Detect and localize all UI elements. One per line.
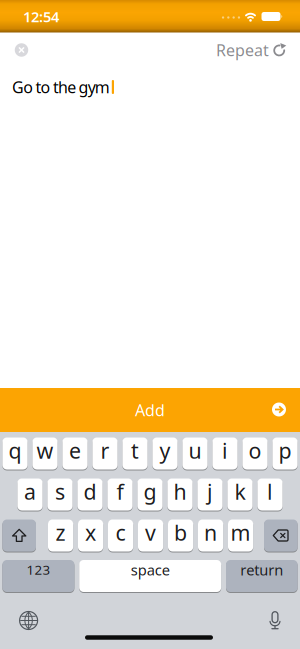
button[interactable]: p xyxy=(272,437,298,470)
button[interactable]: Close xyxy=(10,39,32,61)
button[interactable]: f xyxy=(107,478,133,511)
button[interactable]: e xyxy=(62,437,88,470)
staticText: Repeat xyxy=(216,39,269,61)
staticText: Add xyxy=(135,399,165,421)
staticText: d xyxy=(83,477,96,506)
button[interactable]: j xyxy=(197,478,223,511)
button[interactable]: r xyxy=(92,437,118,470)
button[interactable]: u xyxy=(182,437,208,470)
button[interactable]: Shift xyxy=(2,519,36,552)
button[interactable]: y xyxy=(152,437,178,470)
button[interactable]: z xyxy=(48,519,73,552)
staticText: m xyxy=(231,518,251,547)
staticText: k xyxy=(234,477,245,506)
button[interactable]: Add xyxy=(0,388,300,432)
button[interactable]: i xyxy=(212,437,238,470)
button[interactable]: k xyxy=(227,478,253,511)
staticText: t xyxy=(131,436,139,465)
staticText: n xyxy=(204,518,217,547)
staticText: return xyxy=(240,560,283,579)
button[interactable]: s xyxy=(47,478,73,511)
button[interactable]: Next keyboard xyxy=(14,605,44,635)
button[interactable]: b xyxy=(168,519,193,552)
staticText: o xyxy=(248,436,261,465)
staticText: e xyxy=(69,436,81,465)
button[interactable]: space xyxy=(79,559,221,592)
staticText: f xyxy=(116,477,123,506)
button[interactable]: 123 xyxy=(2,559,74,592)
button[interactable]: l xyxy=(257,478,283,511)
staticText: v xyxy=(145,518,156,547)
button[interactable]: g xyxy=(137,478,163,511)
button[interactable]: x xyxy=(78,519,103,552)
button[interactable]: h xyxy=(167,478,193,511)
staticText: q xyxy=(8,436,21,465)
button[interactable]: Repeat xyxy=(216,38,286,62)
staticText: g xyxy=(143,477,156,506)
staticText: r xyxy=(100,436,109,465)
button[interactable]: Delete xyxy=(264,519,298,552)
staticText: b xyxy=(174,518,187,547)
button[interactable]: a xyxy=(17,478,43,511)
button[interactable]: v xyxy=(138,519,163,552)
staticText: 123 xyxy=(26,561,50,578)
button[interactable]: m xyxy=(228,519,253,552)
button[interactable]: d xyxy=(77,478,103,511)
staticText: x xyxy=(85,518,96,547)
staticText: space xyxy=(131,560,170,579)
staticText: u xyxy=(188,436,201,465)
staticText: y xyxy=(159,436,170,465)
button[interactable]: o xyxy=(242,437,268,470)
staticText: p xyxy=(278,436,291,465)
staticText: w xyxy=(36,436,53,465)
staticText: j xyxy=(207,477,213,506)
staticText: Go to the gym xyxy=(12,76,110,98)
staticText: s xyxy=(55,477,65,506)
staticText: c xyxy=(116,518,126,547)
button[interactable]: q xyxy=(2,437,28,470)
staticText: i xyxy=(222,436,228,465)
button[interactable]: t xyxy=(122,437,148,470)
button[interactable]: w xyxy=(32,437,58,470)
staticText: l xyxy=(267,477,273,506)
staticText: z xyxy=(56,518,66,547)
button[interactable]: Dictate xyxy=(260,605,290,635)
staticText: 12:54 xyxy=(23,7,59,26)
staticText: a xyxy=(24,477,36,506)
button[interactable]: c xyxy=(108,519,133,552)
button[interactable]: return xyxy=(226,559,298,592)
button[interactable]: n xyxy=(198,519,223,552)
staticText: h xyxy=(173,477,186,506)
